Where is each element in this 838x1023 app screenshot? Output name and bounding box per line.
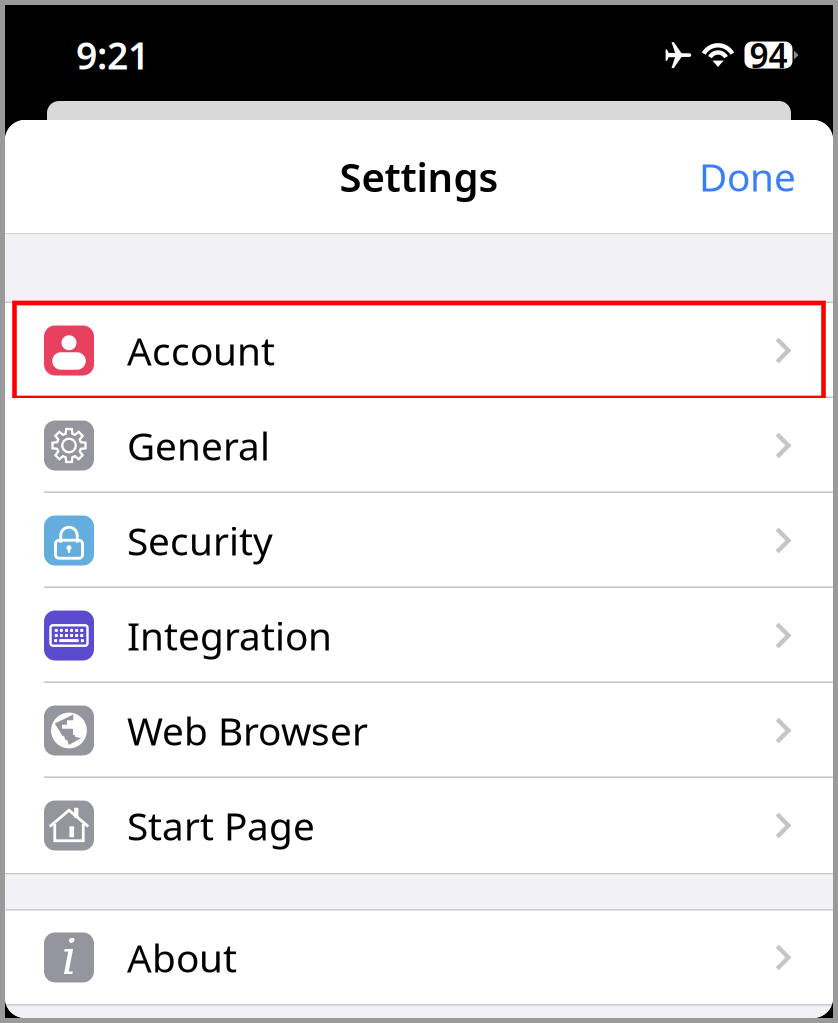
staticText: Web Browser — [127, 705, 368, 756]
staticText: Done — [699, 151, 796, 202]
button[interactable]: Start Page — [5, 778, 833, 873]
staticText: i — [61, 929, 76, 985]
button[interactable]: Web Browser — [5, 683, 833, 778]
button[interactable]: Security — [5, 493, 833, 588]
staticText: 94 — [749, 33, 787, 77]
button[interactable]: Done — [699, 139, 833, 214]
staticText: 9:21 — [76, 30, 149, 80]
button[interactable]: Account — [5, 303, 833, 398]
button[interactable]: General — [5, 398, 833, 493]
staticText: Security — [127, 515, 273, 566]
staticText: About — [127, 932, 237, 983]
staticText: Integration — [127, 610, 332, 661]
button[interactable]: Integration — [5, 588, 833, 683]
staticText: General — [127, 420, 270, 471]
staticText: Settings — [339, 150, 498, 203]
button[interactable]: i — [5, 911, 833, 1004]
staticText: Account — [127, 325, 275, 376]
staticText: Start Page — [127, 800, 315, 851]
